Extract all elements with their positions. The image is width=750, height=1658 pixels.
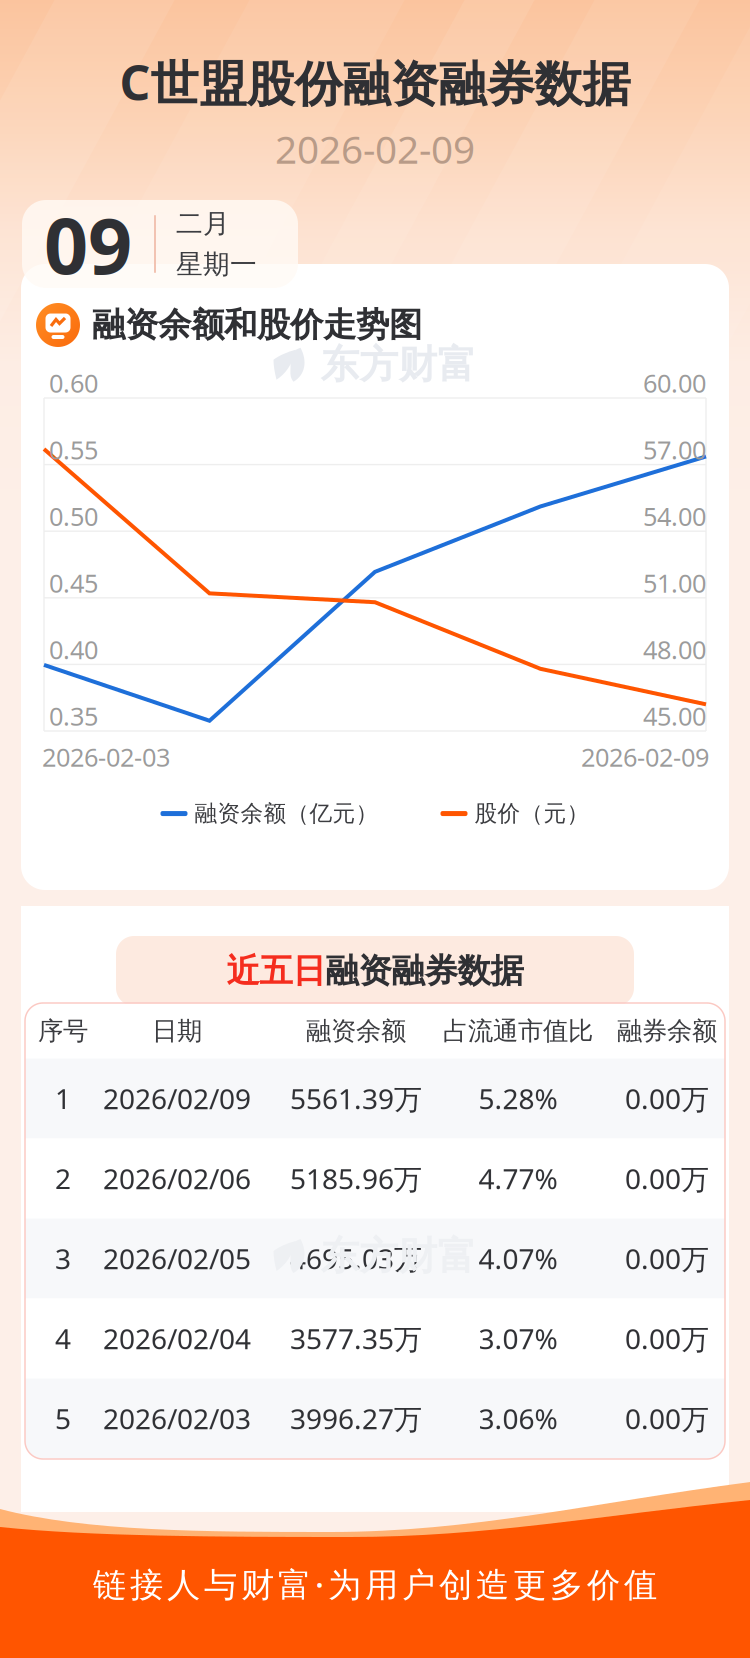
staticText: 54.00 — [643, 499, 706, 533]
staticText: 5185.96万 — [290, 1160, 422, 1197]
staticText: 链接人与财富·为用户创造更多价值 — [93, 1562, 657, 1606]
staticText: 5561.39万 — [290, 1080, 422, 1117]
staticText: 2026/02/05 — [103, 1240, 251, 1277]
staticText: 51.00 — [643, 566, 706, 600]
staticText: 融资余额（亿元） — [194, 800, 378, 827]
staticText: 融券余额 — [617, 1015, 717, 1046]
staticText: 5.28% — [478, 1080, 557, 1117]
staticText: 融资余额和股价走势图 — [92, 304, 422, 345]
staticText: 4695.03万 — [290, 1240, 422, 1277]
staticText: 融资余额 — [306, 1015, 406, 1046]
staticText: 2 — [55, 1160, 71, 1197]
staticText: 4.77% — [478, 1160, 557, 1197]
staticText: 占流通市值比 — [443, 1015, 593, 1046]
staticText: 2026/02/03 — [103, 1400, 251, 1437]
staticText: 星期一 — [176, 248, 257, 281]
staticText: 0.55 — [49, 433, 98, 466]
staticText: 2026-02-09 — [581, 740, 709, 774]
staticText: 1 — [55, 1080, 71, 1117]
staticText: 二月 — [176, 207, 230, 240]
staticText: 0.45 — [49, 566, 98, 600]
staticText: 0.00万 — [625, 1400, 709, 1437]
staticText: 3 — [55, 1240, 71, 1277]
staticText: 2026-02-03 — [42, 740, 170, 774]
staticText: 09 — [44, 193, 132, 295]
staticText: 57.00 — [643, 433, 706, 466]
staticText: 0.00万 — [625, 1320, 709, 1357]
staticText: 48.00 — [643, 633, 706, 666]
staticText: 0.40 — [49, 633, 98, 666]
staticText: 3996.27万 — [290, 1400, 422, 1437]
staticText: 0.00万 — [625, 1160, 709, 1197]
staticText: 序号 — [38, 1015, 88, 1046]
staticText: 4.07% — [478, 1240, 557, 1277]
staticText: 日期 — [152, 1015, 202, 1046]
staticText: 2026/02/04 — [103, 1320, 251, 1357]
staticText: 3.06% — [478, 1400, 557, 1437]
staticText: 0.35 — [49, 699, 98, 733]
staticText: 融资融券数据 — [325, 950, 523, 991]
staticText: C世盟股份融资融券数据 — [119, 50, 630, 114]
staticText: 股价（元） — [474, 800, 589, 827]
staticText: 东方财富 — [320, 1232, 476, 1280]
staticText: 近五日 — [226, 950, 325, 991]
staticText: 60.00 — [643, 366, 706, 400]
staticText: 3.07% — [478, 1320, 557, 1357]
staticText: 2026-02-09 — [275, 123, 475, 174]
staticText: 0.00万 — [625, 1240, 709, 1277]
staticText: 3577.35万 — [290, 1320, 422, 1357]
staticText: 0.60 — [49, 366, 98, 400]
staticText: 45.00 — [643, 699, 706, 733]
staticText: 0.00万 — [625, 1080, 709, 1117]
staticText: 4 — [55, 1320, 71, 1357]
staticText: 2026/02/06 — [103, 1160, 251, 1197]
staticText: 5 — [55, 1400, 71, 1437]
staticText: 东方财富 — [320, 341, 476, 388]
staticText: 2026/02/09 — [103, 1080, 251, 1117]
staticText: 0.50 — [49, 499, 98, 533]
